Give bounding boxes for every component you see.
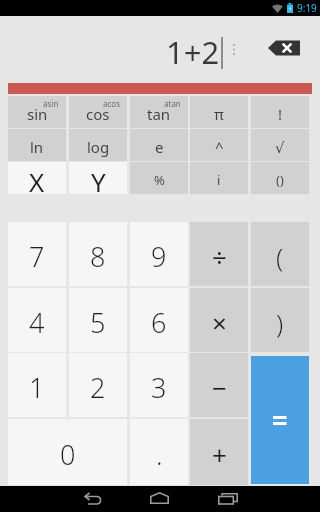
button[interactable]: ÷	[190, 222, 248, 286]
staticText: 4	[29, 304, 45, 341]
button[interactable]	[218, 493, 238, 505]
button[interactable]: %	[130, 162, 188, 194]
button[interactable]: !	[251, 96, 309, 128]
button[interactable]: ^	[190, 129, 248, 161]
staticText: 9:19	[297, 1, 317, 15]
button[interactable]	[84, 493, 102, 506]
staticText: .	[156, 436, 163, 473]
button[interactable]: ()	[251, 162, 309, 194]
staticText: )	[276, 305, 284, 340]
button[interactable]: log	[69, 129, 127, 161]
button[interactable]: 1	[8, 353, 66, 417]
button[interactable]: Y	[69, 162, 127, 194]
button[interactable]: π	[190, 96, 248, 128]
button[interactable]: e	[130, 129, 188, 161]
staticText: tan	[147, 104, 171, 124]
button[interactable]: ×	[190, 288, 248, 352]
button[interactable]: cos	[69, 96, 127, 128]
staticText: 0	[60, 436, 76, 473]
button[interactable]: √	[251, 129, 309, 161]
staticText: X	[29, 164, 45, 196]
button[interactable]	[251, 356, 309, 484]
staticText: 8	[90, 238, 106, 275]
button[interactable]: sin	[8, 96, 66, 128]
button[interactable]: 0	[8, 419, 127, 485]
button[interactable]: 8	[69, 222, 127, 286]
staticText: acos	[103, 98, 120, 109]
button[interactable]	[268, 40, 300, 56]
button[interactable]: X	[8, 162, 66, 194]
staticText: 1+2	[166, 31, 220, 73]
staticText: (	[276, 239, 284, 274]
button[interactable]: 9	[130, 222, 188, 286]
button[interactable]: −	[190, 353, 248, 417]
staticText: −	[212, 370, 227, 405]
staticText: 1	[29, 369, 45, 406]
staticText: 9	[151, 238, 167, 275]
staticText: i	[217, 171, 221, 189]
button[interactable]: i	[190, 162, 248, 194]
staticText: 7	[29, 238, 45, 275]
staticText: ()	[276, 171, 284, 189]
button[interactable]: (	[251, 222, 309, 286]
staticText: 2	[90, 369, 106, 406]
button[interactable]: 7	[8, 222, 66, 286]
button[interactable]: +	[190, 419, 248, 485]
button[interactable]: 3	[130, 353, 188, 417]
button[interactable]: 2	[69, 353, 127, 417]
staticText: log	[87, 137, 110, 157]
staticText: +	[212, 437, 227, 472]
button[interactable]: 4	[8, 288, 66, 352]
button[interactable]: )	[251, 288, 309, 352]
staticText: π	[214, 104, 224, 124]
staticText: 6	[151, 304, 167, 341]
staticText: %	[154, 171, 165, 189]
staticText: 3	[151, 369, 167, 406]
button[interactable]: ln	[8, 129, 66, 161]
button[interactable]: 6	[130, 288, 188, 352]
staticText: e	[155, 137, 164, 157]
staticText: cos	[86, 104, 110, 124]
staticText: ÷	[212, 239, 227, 274]
staticText: Y	[91, 164, 106, 196]
staticText: !	[278, 104, 283, 124]
staticText: asin	[43, 98, 59, 109]
button[interactable]: 1+2	[0, 16, 320, 83]
button[interactable]: .	[130, 419, 188, 485]
staticText: atan	[164, 98, 181, 109]
button[interactable]: tan	[130, 96, 188, 128]
button[interactable]: 5	[69, 288, 127, 352]
staticText: sin	[27, 104, 48, 124]
staticText: ×	[212, 305, 227, 340]
staticText: ^	[215, 137, 224, 157]
staticText: √	[275, 139, 285, 156]
staticText: ln	[30, 137, 44, 157]
button[interactable]	[150, 492, 169, 504]
staticText: 5	[90, 304, 106, 341]
